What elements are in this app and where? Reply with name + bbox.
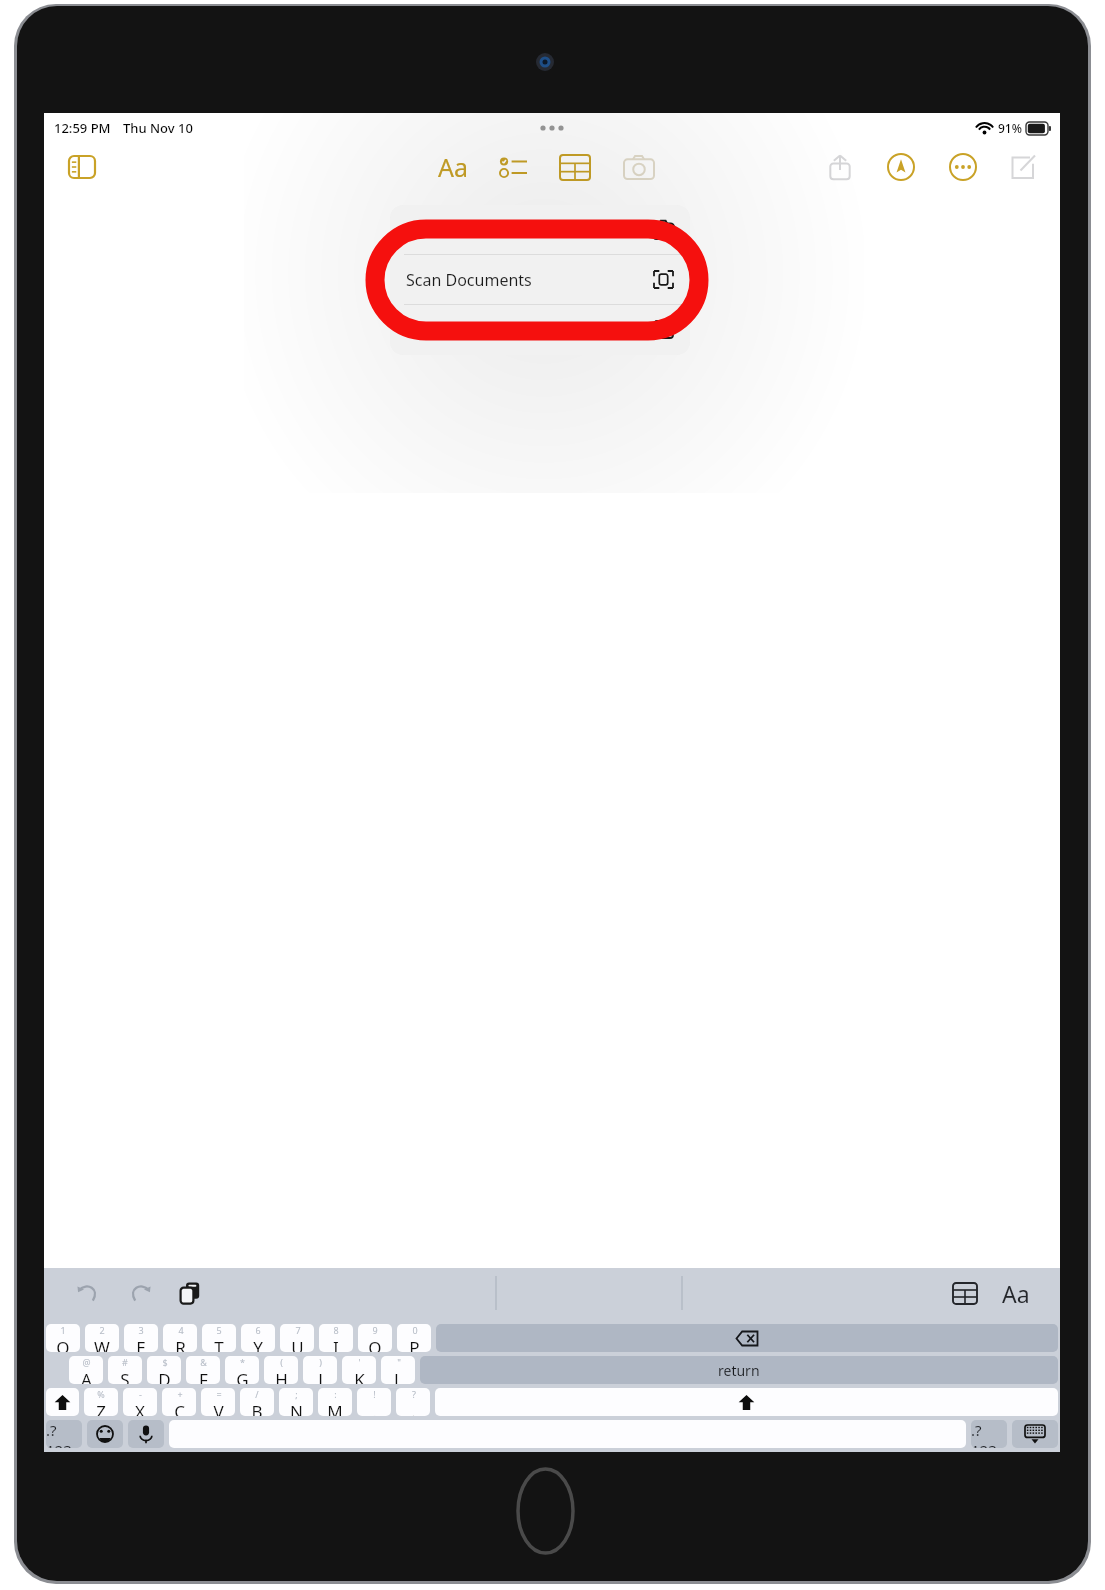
button[interactable]: 1 — [46, 1324, 80, 1352]
staticText: 1 — [60, 1324, 66, 1336]
staticText: 9 — [372, 1324, 378, 1336]
button[interactable]: Table — [942, 1270, 988, 1316]
staticText: ? — [412, 1388, 416, 1400]
staticText: 7 — [295, 1324, 301, 1336]
button[interactable]: .?123 — [971, 1420, 1007, 1448]
staticText: Take Photo or Video — [406, 219, 556, 241]
button[interactable]: " — [381, 1356, 415, 1384]
button[interactable]: Redo — [118, 1271, 162, 1315]
staticText: - — [139, 1388, 142, 1400]
staticText: A — [81, 1368, 92, 1384]
button[interactable]: & — [186, 1356, 220, 1384]
button[interactable]: ( — [264, 1356, 298, 1384]
button[interactable]: Hide keyboard — [1012, 1420, 1058, 1448]
button[interactable]: Shift — [46, 1388, 79, 1416]
staticText: N — [290, 1400, 303, 1416]
button[interactable]: $ — [147, 1356, 181, 1384]
staticText: * — [240, 1356, 245, 1368]
staticText: D — [158, 1368, 171, 1384]
button[interactable]: + — [162, 1388, 196, 1416]
staticText: % — [97, 1388, 105, 1400]
button[interactable]: Format — [992, 1269, 1040, 1317]
staticText: M — [327, 1400, 343, 1416]
staticText: Q — [56, 1336, 70, 1352]
button[interactable]: Scan Documents — [390, 255, 690, 304]
button[interactable]: = — [201, 1388, 235, 1416]
button[interactable]: Take Photo or Video — [390, 205, 690, 254]
button[interactable]: : — [318, 1388, 352, 1416]
button[interactable]: @ — [69, 1356, 103, 1384]
button[interactable]: ? — [396, 1388, 430, 1416]
staticText: = — [216, 1388, 222, 1400]
button[interactable]: Sidebar — [60, 145, 104, 189]
button[interactable]: 5 — [202, 1324, 236, 1352]
button[interactable]: Dictate — [128, 1420, 164, 1448]
button[interactable]: Format — [424, 146, 482, 188]
staticText: ' — [358, 1356, 361, 1368]
staticText: .?123 — [46, 1420, 82, 1448]
staticText: P — [409, 1336, 420, 1352]
staticText: .?123 — [971, 1420, 1007, 1448]
staticText: U — [291, 1336, 304, 1352]
staticText: I — [333, 1336, 339, 1352]
button[interactable]: - — [123, 1388, 157, 1416]
button[interactable]: 9 — [358, 1324, 392, 1352]
button[interactable]: 0 — [397, 1324, 431, 1352]
button[interactable]: ) — [303, 1356, 337, 1384]
button[interactable]: 6 — [241, 1324, 275, 1352]
button[interactable]: Shift — [435, 1388, 1058, 1416]
button[interactable]: 7 — [280, 1324, 314, 1352]
button[interactable]: return — [420, 1356, 1058, 1384]
button[interactable]: Share — [810, 145, 870, 189]
button[interactable]: 8 — [319, 1324, 353, 1352]
staticText: 4 — [178, 1324, 184, 1336]
staticText: J — [318, 1368, 323, 1384]
button[interactable]: / — [240, 1388, 274, 1416]
staticText: T — [214, 1336, 224, 1352]
button[interactable]: ! — [357, 1388, 391, 1416]
staticText: 3 — [138, 1324, 144, 1336]
staticText: @ — [82, 1356, 91, 1368]
button[interactable]: 4 — [163, 1324, 197, 1352]
button[interactable]: Emoji — [87, 1420, 123, 1448]
button[interactable]: ; — [279, 1388, 313, 1416]
staticText: ( — [280, 1356, 283, 1368]
button[interactable]: 2 — [85, 1324, 119, 1352]
button[interactable]: Paste — [168, 1271, 212, 1315]
button[interactable]: * — [225, 1356, 259, 1384]
button[interactable]: ' — [342, 1356, 376, 1384]
staticText: V — [213, 1400, 224, 1416]
button[interactable]: Camera — [606, 146, 672, 188]
button[interactable]: Checklist — [482, 146, 544, 188]
button[interactable]: 3 — [124, 1324, 158, 1352]
staticText: & — [200, 1356, 207, 1368]
button[interactable]: .?123 — [46, 1420, 82, 1448]
staticText: Aa — [1002, 1278, 1030, 1309]
staticText: B — [251, 1400, 263, 1416]
staticText: 8 — [333, 1324, 339, 1336]
staticText: X — [135, 1400, 145, 1416]
staticText: Aa — [438, 150, 469, 184]
button[interactable]: # — [108, 1356, 142, 1384]
button[interactable]: More — [932, 145, 994, 189]
staticText: W — [94, 1336, 110, 1352]
button[interactable]: Choose Photo or Video — [390, 305, 690, 354]
staticText: Scan Documents — [406, 269, 532, 291]
button[interactable]: Markup — [870, 145, 932, 189]
button[interactable]: New note — [994, 145, 1050, 189]
staticText: K — [354, 1368, 365, 1384]
staticText: return — [718, 1361, 760, 1380]
button[interactable]: Undo — [66, 1271, 110, 1315]
staticText: 2 — [99, 1324, 105, 1336]
staticText: L — [394, 1368, 403, 1384]
button[interactable]: Table — [544, 146, 606, 188]
staticText: ! — [373, 1388, 376, 1400]
button[interactable]: Delete — [436, 1324, 1058, 1352]
button[interactable]: % — [84, 1388, 118, 1416]
staticText: 91% — [998, 120, 1022, 136]
staticText: / — [255, 1388, 259, 1400]
staticText: $ — [162, 1356, 168, 1368]
